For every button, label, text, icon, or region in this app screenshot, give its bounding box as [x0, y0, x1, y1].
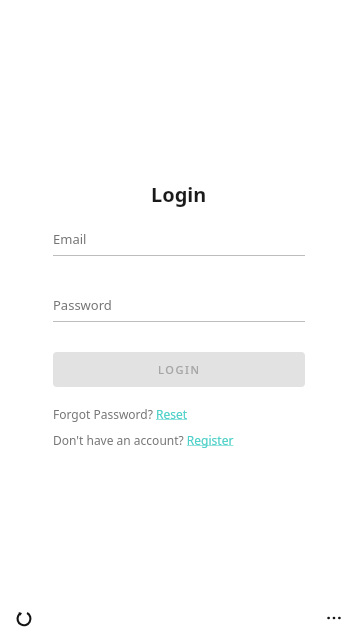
- staticText: Don't have an account? Register: [53, 432, 234, 448]
- staticText: Login: [151, 181, 207, 208]
- button[interactable]: Forgot Password? Reset: [53, 406, 188, 422]
- staticText: Password: [53, 296, 112, 314]
- staticText: Email: [53, 230, 87, 248]
- staticText: LOGIN: [158, 362, 201, 377]
- button[interactable]: LOGIN: [53, 352, 305, 387]
- button[interactable]: Back: [10, 604, 38, 632]
- button[interactable]: Email: [53, 230, 305, 256]
- button[interactable]: Don't have an account? Register: [53, 432, 234, 448]
- button[interactable]: Password: [53, 296, 305, 322]
- staticText: Forgot Password? Reset: [53, 406, 188, 422]
- button[interactable]: More options: [320, 604, 348, 632]
